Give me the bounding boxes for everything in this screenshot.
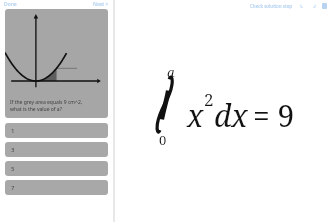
button[interactable]: 7: [5, 180, 108, 195]
staticText: 3: [11, 146, 15, 154]
button[interactable]: Check solution step: [249, 3, 294, 9]
button[interactable]: Done: [3, 1, 18, 8]
button[interactable]: Undo: [299, 2, 307, 10]
staticText: 1: [11, 127, 15, 135]
staticText: 2: [204, 88, 214, 111]
staticText: If the grey area equals 9 cm^2,: [10, 99, 83, 106]
button[interactable]: Redo: [309, 2, 317, 10]
button[interactable]: Delete: [320, 1, 329, 10]
button[interactable]: 1: [5, 123, 108, 138]
staticText: Check solution step: [250, 3, 293, 9]
staticText: 7: [11, 184, 15, 192]
staticText: 5: [11, 165, 15, 173]
staticText: a: [167, 63, 175, 81]
staticText: Next >: [93, 1, 109, 8]
staticText: 0: [159, 131, 167, 149]
staticText: dx: [214, 95, 248, 136]
button[interactable]: If the grey area equals 9 cm^2,: [5, 9, 108, 118]
staticText: what is the value of a?: [10, 106, 62, 113]
staticText: Done: [4, 1, 17, 8]
button[interactable]: 3: [5, 142, 108, 157]
staticText: = 9: [253, 95, 295, 136]
button[interactable]: Next >: [92, 1, 110, 8]
button[interactable]: 5: [5, 161, 108, 176]
staticText: x: [187, 95, 204, 136]
